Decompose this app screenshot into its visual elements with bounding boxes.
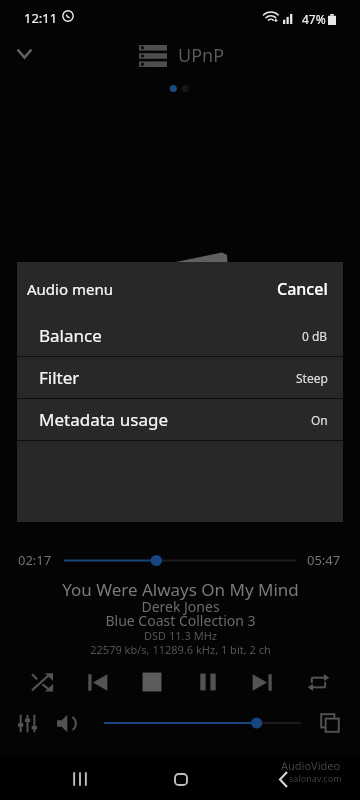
staticText: Cancel (277, 278, 328, 300)
staticText: 12:11 (24, 9, 58, 27)
staticText: Blue Coast Collection 3 (105, 611, 256, 630)
staticText: 47% (302, 11, 326, 27)
button[interactable]: Shuffle (25, 665, 59, 699)
button[interactable]: Pause (191, 665, 225, 699)
button[interactable]: Playlist (313, 706, 347, 740)
button[interactable]: Filter (17, 357, 343, 398)
button[interactable]: Volume level (100, 716, 305, 730)
staticText: Balance (39, 324, 102, 347)
button[interactable]: Back (268, 764, 298, 794)
staticText: Derek Jones (141, 597, 220, 616)
staticText: 05:47 (307, 551, 341, 569)
staticText: Audio menu (27, 279, 113, 299)
staticText: DSD 11.3 MHz (144, 628, 217, 643)
staticText: UPnP (178, 43, 225, 68)
staticText: Metadata usage (39, 408, 168, 431)
button[interactable]: Home (166, 764, 196, 794)
staticText: Steep (296, 370, 328, 386)
button[interactable]: Recent apps (65, 764, 95, 794)
button[interactable]: Audio menu (17, 262, 343, 315)
staticText: On (311, 412, 328, 428)
button[interactable]: Next (245, 665, 279, 699)
staticText: 0 dB (302, 328, 328, 344)
button[interactable]: Balance (17, 315, 343, 356)
button[interactable]: Stop (135, 665, 169, 699)
staticText: 22579 kb/s, 11289.6 kHz, 1 bit, 2 ch (90, 642, 271, 657)
button[interactable]: Collapse (9, 38, 40, 69)
button[interactable]: Equalizer (10, 706, 44, 740)
button[interactable]: Seek (60, 553, 300, 568)
staticText: salonav.com (289, 772, 342, 784)
button[interactable]: Volume (49, 706, 83, 740)
button[interactable]: Previous (80, 665, 114, 699)
staticText: You Were Always On My Mind (62, 578, 299, 601)
staticText: Filter (39, 366, 80, 389)
staticText: AudioVideo (281, 758, 341, 773)
staticText: 02:17 (18, 551, 52, 569)
button[interactable]: Metadata usage (17, 399, 343, 440)
button[interactable]: Repeat (301, 665, 335, 699)
